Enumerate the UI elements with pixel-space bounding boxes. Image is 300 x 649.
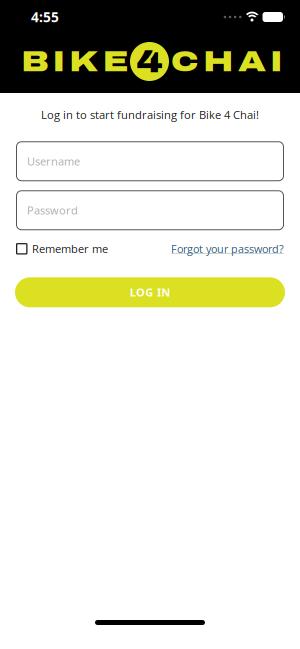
staticText: Forgot your password? bbox=[171, 241, 284, 256]
staticText: CHAI bbox=[171, 45, 282, 77]
button[interactable]: Remember me bbox=[16, 241, 108, 256]
button[interactable]: Username bbox=[16, 141, 284, 181]
staticText: BIKE bbox=[21, 45, 128, 77]
staticText: Password bbox=[27, 203, 78, 218]
staticText: Remember me bbox=[32, 241, 108, 256]
button[interactable]: LOG IN bbox=[15, 277, 285, 307]
button[interactable]: Forgot your password? bbox=[171, 241, 284, 256]
button[interactable]: Password bbox=[16, 190, 284, 230]
staticText: 4:55 bbox=[31, 8, 59, 26]
staticText: Log in to start fundraising for Bike 4 C… bbox=[41, 107, 259, 122]
staticText: LOG IN bbox=[130, 285, 170, 300]
staticText: 4 bbox=[136, 44, 162, 79]
staticText: Username bbox=[27, 154, 80, 169]
